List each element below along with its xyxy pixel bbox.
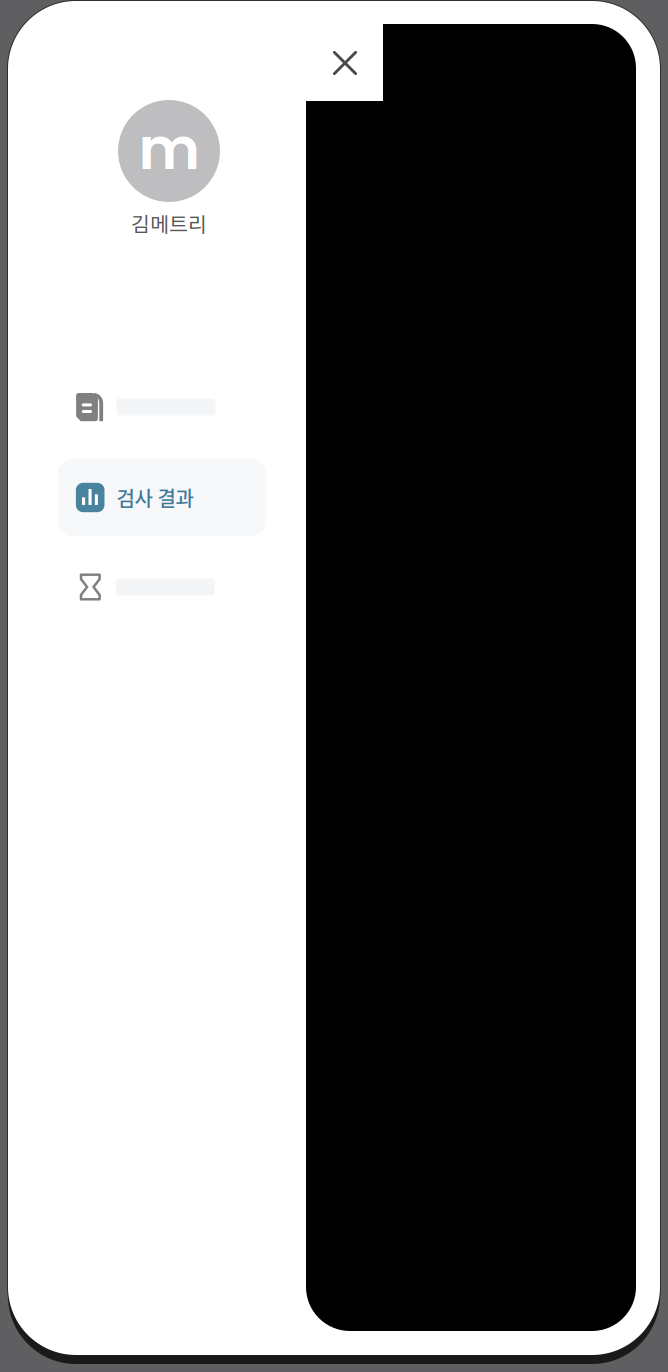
staticText: 김메트리 [131, 208, 207, 238]
button[interactable]: Menu item [58, 378, 265, 436]
button[interactable]: Close [323, 41, 367, 85]
button[interactable]: Menu item [58, 558, 265, 616]
button[interactable]: 검사 결과 [58, 459, 266, 536]
staticText: 검사 결과 [116, 483, 193, 512]
staticText: m [138, 107, 199, 189]
